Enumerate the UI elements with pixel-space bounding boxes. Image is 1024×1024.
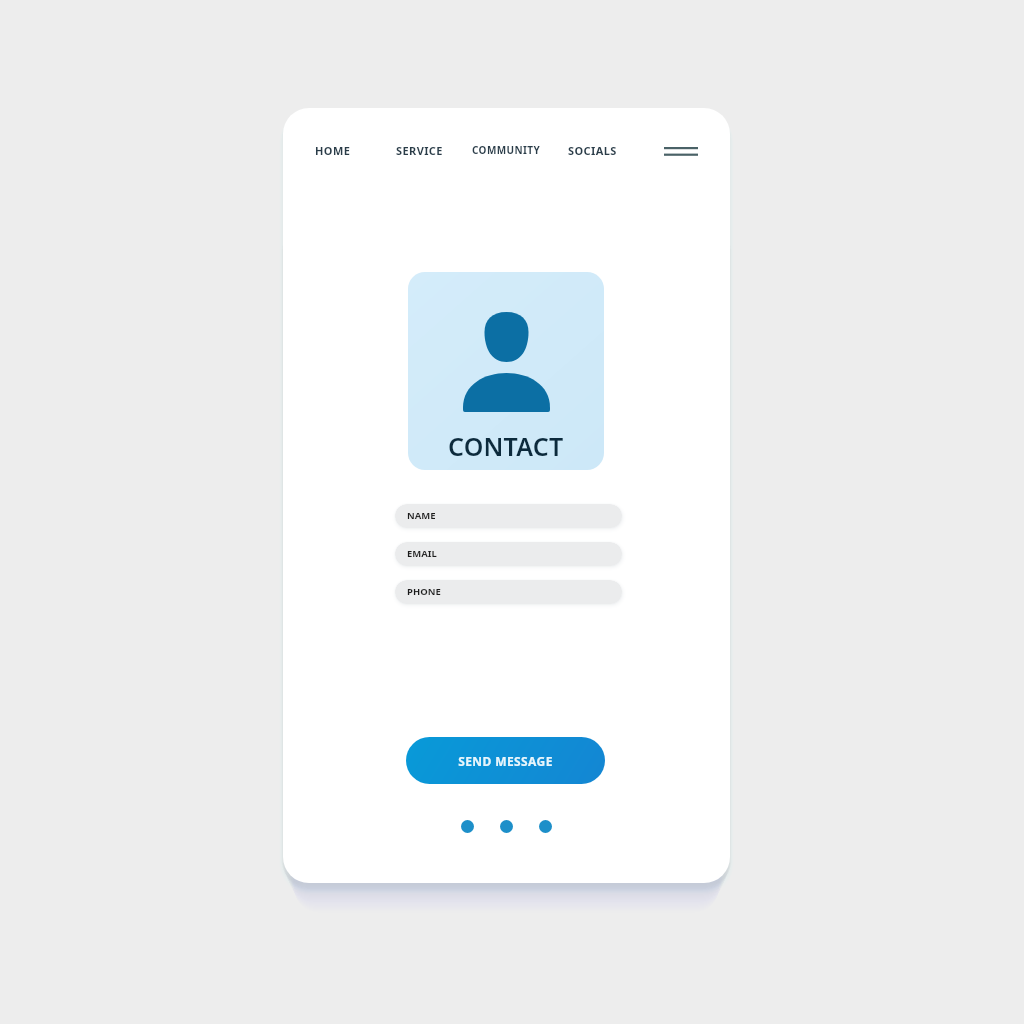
button[interactable]: CONTACT	[408, 272, 604, 470]
staticText: EMAIL	[407, 547, 437, 560]
staticText: SERVICE	[396, 143, 443, 158]
button[interactable]: Page 1	[461, 820, 474, 833]
button[interactable]: SOCIALS	[568, 143, 617, 158]
button[interactable]: Page 2	[500, 820, 513, 833]
staticText: COMMUNITY	[472, 143, 541, 157]
staticText: SOCIALS	[568, 143, 617, 158]
staticText: CONTACT	[448, 429, 564, 463]
staticText: HOME	[315, 143, 351, 158]
staticText: NAME	[407, 509, 436, 522]
button[interactable]: SEND MESSAGE	[406, 737, 605, 784]
button[interactable]: SERVICE	[396, 143, 443, 158]
staticText: PHONE	[407, 585, 441, 598]
button[interactable]: PHONE	[395, 580, 622, 604]
staticText: SEND MESSAGE	[458, 753, 553, 769]
button[interactable]: EMAIL	[395, 542, 622, 566]
button[interactable]: NAME	[395, 504, 622, 528]
button[interactable]: COMMUNITY	[472, 143, 541, 157]
button[interactable]: HOME	[315, 143, 351, 158]
button[interactable]: Page 3	[539, 820, 552, 833]
button[interactable]: Menu	[661, 138, 701, 162]
